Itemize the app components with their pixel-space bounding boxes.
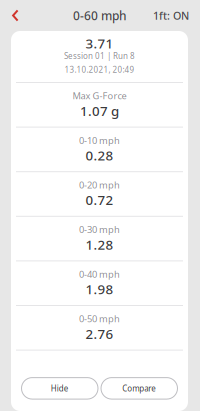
staticText: 0.28	[85, 146, 113, 164]
staticText: 0-30 mph	[79, 223, 120, 236]
staticText: 2.76	[85, 325, 113, 343]
staticText: 1.07 g	[80, 102, 119, 120]
staticText: 0-50 mph	[79, 312, 120, 325]
staticText: 0.72	[85, 191, 113, 209]
staticText: Max G-Force	[72, 89, 126, 102]
staticText: 0-20 mph	[79, 179, 120, 191]
button[interactable]: Compare	[101, 378, 177, 399]
staticText: 1ft: ON	[153, 8, 189, 23]
staticText: 0-40 mph	[79, 268, 120, 280]
staticText: 1.98	[85, 280, 113, 298]
staticText: 1.28	[85, 236, 113, 253]
button[interactable]: 1ft: ON	[151, 3, 191, 28]
button[interactable]: Hide	[21, 378, 98, 399]
button[interactable]: Back	[7, 4, 24, 27]
staticText: Compare	[122, 383, 156, 394]
staticText: 0-10 mph	[79, 134, 120, 146]
staticText: Hide	[51, 383, 69, 394]
staticText: Session 01 | Run 8	[64, 51, 135, 61]
staticText: 3.71	[85, 34, 113, 52]
staticText: 13.10.2021, 20:49	[64, 64, 134, 75]
staticText: 0-60 mph	[73, 7, 127, 23]
